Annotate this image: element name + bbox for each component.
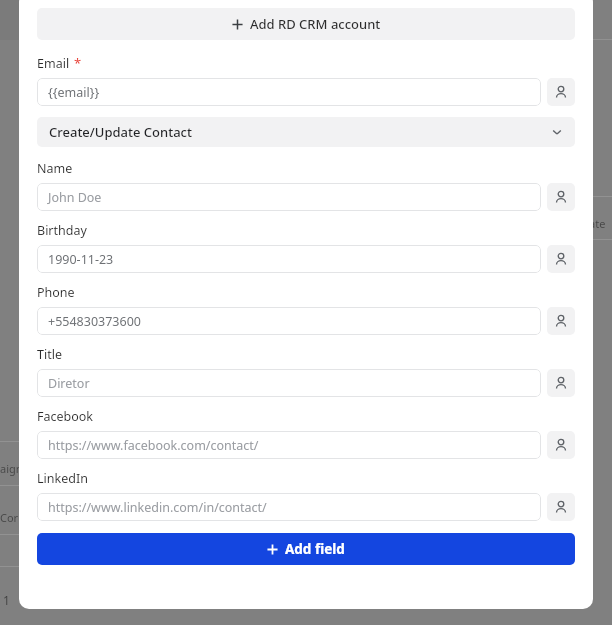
button[interactable]: Insert LinkedIn variable — [547, 493, 575, 521]
staticText: +554830373600 — [48, 313, 141, 330]
button[interactable]: Insert Phone variable — [547, 307, 575, 335]
button[interactable]: Create/Update Contact — [37, 117, 575, 147]
staticText: LinkedIn — [37, 470, 88, 487]
staticText: Birthday — [37, 222, 87, 239]
staticText: 1 — [3, 592, 10, 608]
staticText: Diretor — [48, 375, 90, 392]
button[interactable]: Diretor — [37, 369, 541, 397]
button[interactable]: Insert Title variable — [547, 369, 575, 397]
staticText: * — [74, 54, 82, 72]
button[interactable]: Insert Name variable — [547, 183, 575, 211]
staticText: 1990-11-23 — [48, 251, 114, 268]
staticText: Cor — [0, 510, 19, 525]
button[interactable]: Add field — [37, 533, 575, 565]
staticText: Facebook — [37, 408, 94, 425]
button[interactable]: https://www.facebook.com/contact/ — [37, 431, 541, 459]
staticText: Create/Update Contact — [49, 123, 551, 141]
staticText: Name — [37, 160, 73, 177]
staticText: aign — [0, 461, 23, 476]
staticText: John Doe — [48, 189, 102, 206]
button[interactable]: 1990-11-23 — [37, 245, 541, 273]
button[interactable]: Add RD CRM account — [37, 8, 575, 40]
button[interactable]: Insert Email variable — [547, 78, 575, 106]
button[interactable]: +554830373600 — [37, 307, 541, 335]
button[interactable]: https://www.linkedin.com/in/contact/ — [37, 493, 541, 521]
staticText: Email — [37, 55, 70, 72]
staticText: Title — [37, 346, 62, 363]
staticText: https://www.facebook.com/contact/ — [48, 437, 259, 454]
button[interactable]: John Doe — [37, 183, 541, 211]
staticText: {{email}} — [48, 84, 100, 101]
button[interactable]: {{email}} — [37, 78, 541, 106]
button[interactable]: Insert Birthday variable — [547, 245, 575, 273]
staticText: Phone — [37, 284, 75, 301]
button[interactable]: Insert Facebook variable — [547, 431, 575, 459]
staticText: Add RD CRM account — [250, 15, 381, 33]
staticText: ate — [589, 216, 606, 231]
staticText: https://www.linkedin.com/in/contact/ — [48, 499, 267, 516]
staticText: Add field — [285, 540, 345, 558]
